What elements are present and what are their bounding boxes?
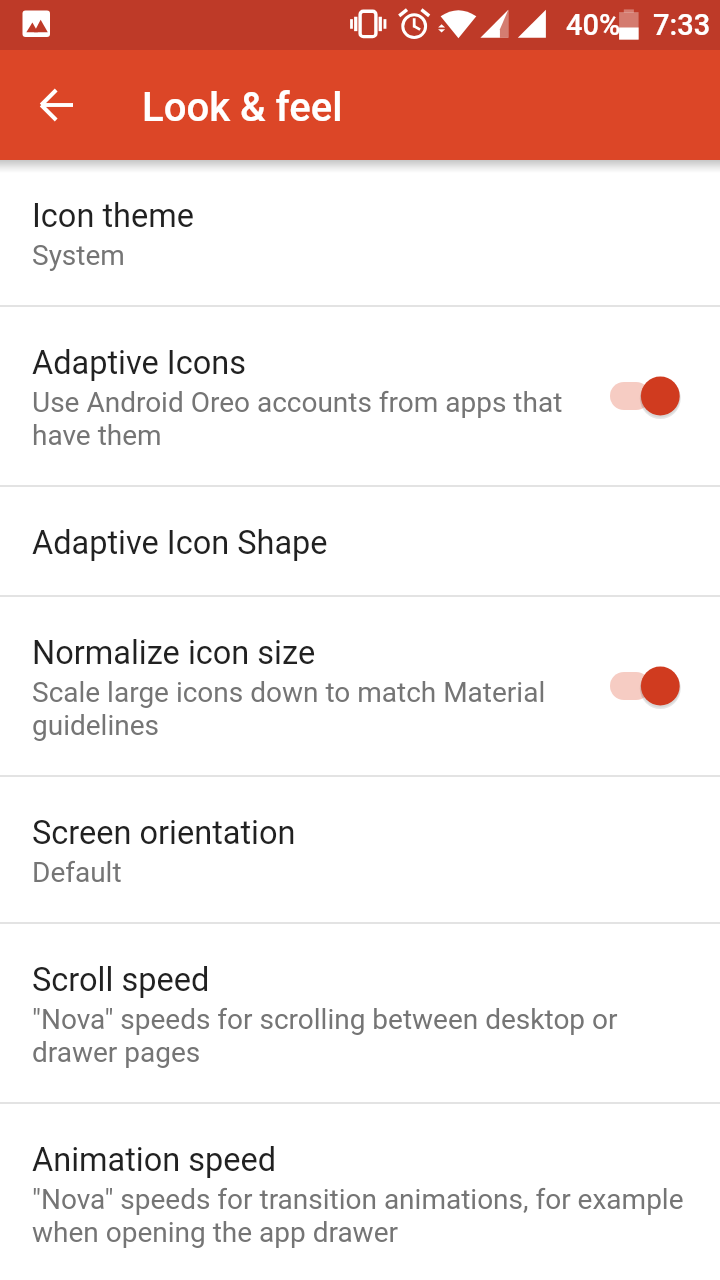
- staticText: System: [32, 239, 125, 272]
- staticText: 40%: [566, 8, 621, 42]
- staticText: Scroll speed: [32, 961, 210, 999]
- button[interactable]: Toggle setting: [610, 370, 696, 422]
- button[interactable]: Scroll speed: [0, 924, 720, 1102]
- button[interactable]: Adaptive Icons: [0, 307, 720, 485]
- button[interactable]: Toggle setting: [610, 660, 696, 712]
- button[interactable]: Icon theme: [0, 160, 720, 305]
- staticText: Scale large icons down to match Material…: [32, 676, 600, 742]
- button[interactable]: Animation speed: [0, 1104, 720, 1280]
- button[interactable]: Normalize icon size: [0, 597, 720, 775]
- staticText: Use Android Oreo accounts from apps that…: [32, 386, 600, 452]
- staticText: "Nova" speeds for transition animations,…: [32, 1183, 696, 1249]
- staticText: Default: [32, 856, 122, 889]
- staticText: Icon theme: [32, 197, 194, 235]
- staticText: 7:33: [653, 8, 711, 42]
- button[interactable]: Navigate up: [12, 61, 101, 150]
- staticText: Screen orientation: [32, 814, 296, 852]
- staticText: "Nova" speeds for scrolling between desk…: [32, 1003, 696, 1069]
- staticText: Look & feel: [142, 84, 343, 131]
- button[interactable]: Screen orientation: [0, 777, 720, 922]
- staticText: Normalize icon size: [32, 634, 316, 672]
- button[interactable]: Adaptive Icon Shape: [0, 487, 720, 595]
- staticText: Adaptive Icons: [32, 344, 246, 382]
- staticText: Adaptive Icon Shape: [32, 524, 328, 562]
- staticText: Animation speed: [32, 1141, 277, 1179]
